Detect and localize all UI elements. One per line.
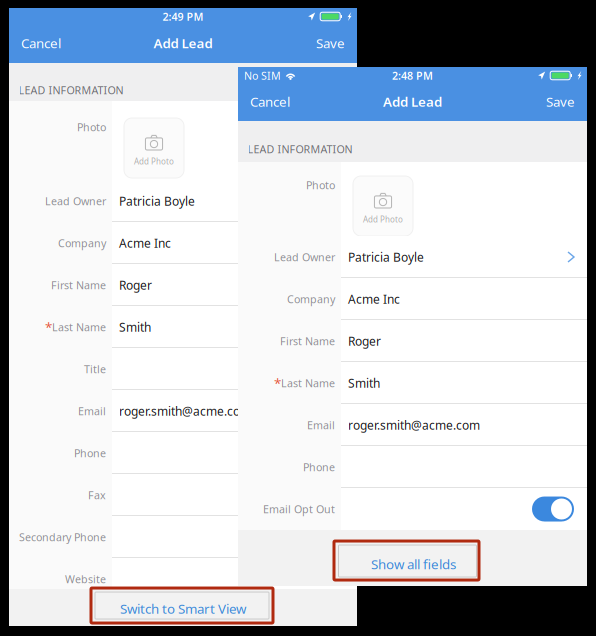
- staticText: Email: [307, 418, 335, 432]
- staticText: Roger: [119, 277, 152, 293]
- button[interactable]: Add Photo: [124, 118, 184, 178]
- staticText: Cancel: [21, 34, 61, 52]
- staticText: LEAD INFORMATION: [247, 142, 352, 156]
- staticText: Add Lead: [383, 93, 442, 110]
- staticText: Save: [546, 93, 575, 110]
- button[interactable]: *: [238, 362, 587, 404]
- staticText: Acme Inc: [348, 291, 400, 307]
- staticText: Smith: [119, 319, 151, 335]
- button[interactable]: Phone: [9, 432, 357, 474]
- staticText: Secondary Phone: [19, 530, 106, 544]
- staticText: Lead Owner: [45, 194, 106, 208]
- staticText: Acme Inc: [119, 235, 171, 251]
- staticText: Website: [65, 572, 106, 586]
- staticText: roger.smith@acme.com: [119, 403, 251, 419]
- staticText: Add Photo: [363, 214, 403, 225]
- staticText: Fax: [88, 488, 106, 502]
- button[interactable]: Show all fields: [338, 545, 476, 577]
- staticText: Patricia Boyle: [119, 193, 195, 209]
- staticText: *: [274, 374, 281, 392]
- staticText: Cancel: [250, 93, 290, 110]
- staticText: No SIM: [244, 68, 281, 83]
- button[interactable]: Email: [9, 390, 357, 432]
- staticText: Photo: [306, 178, 335, 192]
- button[interactable]: Lead Owner: [9, 180, 357, 222]
- staticText: Switch to Smart View: [120, 600, 246, 617]
- button[interactable]: Lead Owner: [238, 236, 587, 278]
- staticText: Last Name: [281, 376, 335, 390]
- staticText: Title: [84, 362, 106, 376]
- button[interactable]: *: [9, 306, 357, 348]
- staticText: Email Opt Out: [263, 502, 335, 516]
- button[interactable]: Company: [9, 222, 357, 264]
- button[interactable]: Phone: [238, 446, 587, 488]
- button[interactable]: Title: [9, 348, 357, 390]
- staticText: First Name: [280, 334, 335, 348]
- button[interactable]: First Name: [238, 320, 587, 362]
- button[interactable]: Secondary Phone: [9, 516, 357, 558]
- staticText: Add Photo: [134, 156, 174, 167]
- button[interactable]: Company: [238, 278, 587, 320]
- staticText: Patricia Boyle: [348, 249, 424, 265]
- staticText: Smith: [348, 375, 380, 391]
- staticText: *: [45, 318, 52, 336]
- staticText: Phone: [303, 460, 335, 474]
- staticText: Save: [316, 34, 345, 52]
- staticText: 2:48 PM: [392, 68, 433, 83]
- button[interactable]: Fax: [9, 474, 357, 516]
- button[interactable]: Email Opt Out: [238, 488, 587, 530]
- button[interactable]: Cancel: [9, 29, 73, 63]
- staticText: Photo: [77, 120, 106, 134]
- staticText: 2:49 PM: [162, 9, 203, 24]
- button[interactable]: Switch to Smart View: [95, 592, 269, 619]
- staticText: Company: [287, 292, 335, 306]
- staticText: Add Lead: [153, 34, 212, 52]
- staticText: First Name: [51, 278, 106, 292]
- staticText: Lead Owner: [274, 250, 335, 264]
- staticText: Phone: [74, 446, 106, 460]
- button[interactable]: Save: [534, 88, 587, 121]
- staticText: Show all fields: [371, 555, 456, 573]
- staticText: Last Name: [52, 320, 106, 334]
- staticText: LEAD INFORMATION: [18, 83, 123, 97]
- button[interactable]: Email: [238, 404, 587, 446]
- staticText: roger.smith@acme.com: [348, 417, 480, 433]
- button[interactable]: Save: [304, 29, 357, 63]
- staticText: Roger: [348, 333, 381, 349]
- staticText: Company: [58, 236, 106, 250]
- button[interactable]: Website: [9, 558, 357, 600]
- button[interactable]: Cancel: [238, 88, 302, 121]
- button[interactable]: First Name: [9, 264, 357, 306]
- button[interactable]: Add Photo: [353, 176, 413, 236]
- staticText: Email: [78, 404, 106, 418]
